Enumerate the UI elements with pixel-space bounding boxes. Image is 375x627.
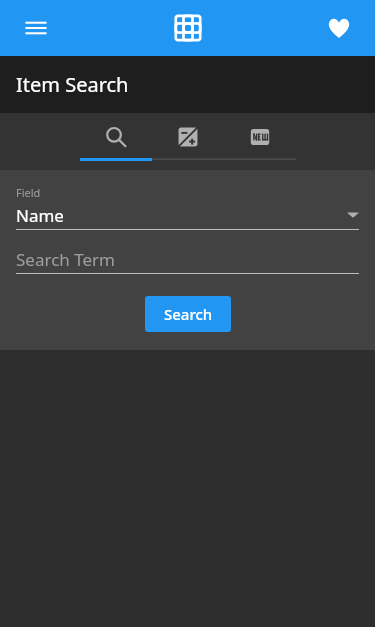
button[interactable]: Open navigation menu [12,4,60,52]
staticText: Name [16,204,64,227]
button[interactable]: App logo [166,6,210,50]
button[interactable]: Favourites [315,4,363,52]
staticText: Item Search [16,71,129,98]
staticText: Field [16,185,41,200]
button[interactable]: Name [16,200,359,230]
staticText: Search Term [16,248,115,271]
staticText: Search [164,304,213,324]
button[interactable]: Search [145,296,231,332]
button[interactable]: Exposure tab [152,113,224,170]
button[interactable]: Search Term [16,244,359,274]
button[interactable]: New items tab [224,113,296,170]
button[interactable]: Search tab [80,113,152,170]
